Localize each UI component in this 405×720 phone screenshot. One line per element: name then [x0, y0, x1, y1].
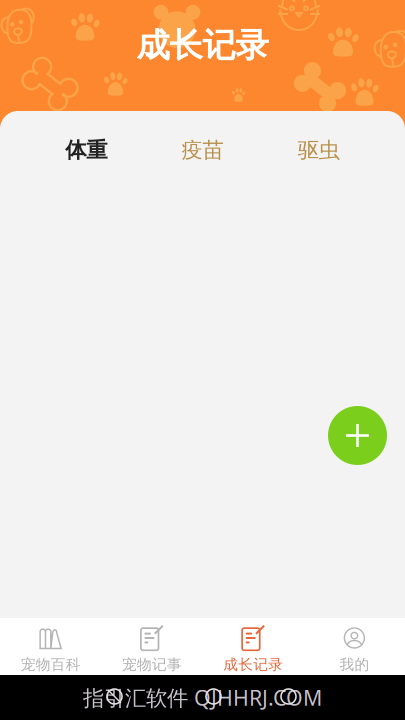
- button[interactable]: 疫苗: [144, 123, 261, 177]
- button[interactable]: 成长记录: [202, 613, 304, 679]
- button[interactable]: 宠物记事: [101, 613, 202, 679]
- staticText: 驱虫: [298, 137, 340, 163]
- staticText: 我的: [339, 655, 369, 673]
- button[interactable]: 驱虫: [261, 123, 377, 177]
- staticText: 指引汇软件 QJHHRJ.COM: [83, 683, 322, 712]
- button[interactable]: 添加记录: [328, 406, 387, 465]
- staticText: 成长记录: [136, 25, 268, 66]
- staticText: 疫苗: [181, 137, 223, 163]
- staticText: 宠物百科: [21, 655, 81, 673]
- staticText: 成长记录: [223, 655, 283, 673]
- button[interactable]: 宠物百科: [0, 613, 101, 679]
- staticText: 宠物记事: [122, 655, 182, 673]
- button[interactable]: 体重: [28, 123, 144, 177]
- button[interactable]: 我的: [304, 613, 405, 679]
- staticText: 体重: [65, 137, 107, 163]
